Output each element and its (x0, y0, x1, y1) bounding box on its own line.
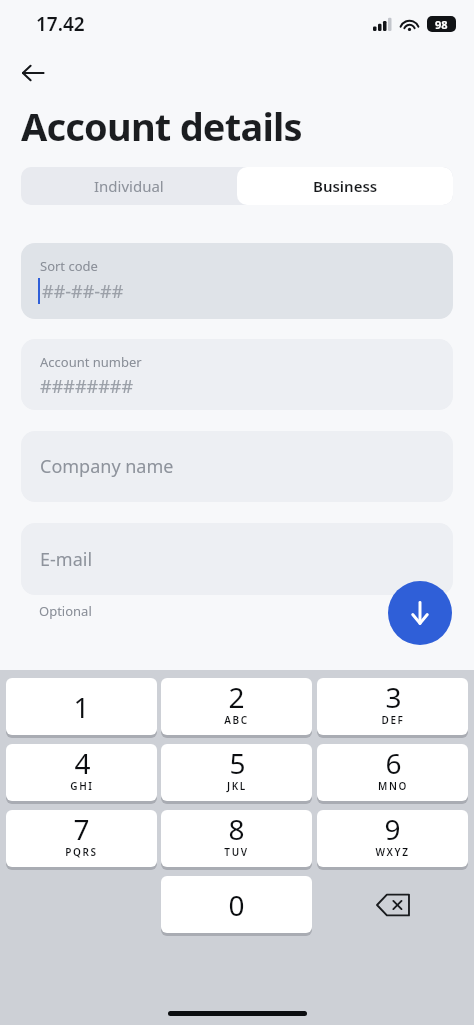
button[interactable]: Account number (21, 339, 453, 410)
button[interactable]: 1 (6, 678, 157, 735)
button[interactable]: 8 (161, 810, 312, 867)
button[interactable]: 2 (161, 678, 312, 735)
staticText: ABC (224, 713, 249, 727)
staticText: PQRS (65, 845, 98, 859)
button[interactable]: Backspace (317, 876, 468, 933)
button[interactable]: 0 (161, 876, 312, 933)
staticText: Business (313, 176, 378, 196)
button[interactable]: E-mail (21, 523, 453, 595)
staticText: TUV (224, 845, 249, 859)
button[interactable]: Individual (21, 167, 237, 205)
staticText: 2 (228, 678, 245, 716)
staticText: Account details (21, 100, 302, 152)
staticText: JKL (227, 779, 247, 793)
staticText: 9 (384, 810, 401, 848)
button[interactable]: 7 (6, 810, 157, 867)
staticText: Optional (39, 602, 92, 620)
button[interactable]: Back (12, 52, 54, 94)
staticText: DEF (381, 713, 405, 727)
staticText: 5 (229, 744, 246, 782)
button[interactable]: Scroll down (388, 581, 452, 645)
button[interactable]: 6 (317, 744, 468, 801)
button[interactable]: 5 (161, 744, 312, 801)
staticText: Sort code (40, 257, 98, 275)
staticText: ##-##-## (42, 279, 124, 304)
staticText: 0 (228, 886, 245, 924)
staticText: 3 (385, 678, 402, 716)
staticText: 4 (74, 744, 91, 782)
staticText: 7 (73, 810, 90, 848)
staticText: ######## (40, 374, 134, 399)
button[interactable]: 4 (6, 744, 157, 801)
staticText: 98 (435, 17, 448, 32)
button[interactable]: Business (237, 167, 453, 205)
staticText: E-mail (40, 547, 93, 572)
button[interactable]: 9 (317, 810, 468, 867)
staticText: 8 (228, 810, 245, 848)
staticText: 17.42 (36, 11, 85, 37)
staticText: Company name (40, 454, 174, 479)
button[interactable]: Sort code (21, 243, 453, 319)
button[interactable]: 3 (317, 678, 468, 735)
staticText: 6 (385, 744, 402, 782)
staticText: MNO (378, 779, 408, 793)
staticText: GHI (70, 779, 94, 793)
staticText: 1 (73, 688, 90, 726)
staticText: Account number (40, 353, 142, 371)
staticText: Individual (94, 176, 164, 196)
staticText: WXYZ (375, 845, 410, 859)
button[interactable]: Company name (21, 431, 453, 502)
